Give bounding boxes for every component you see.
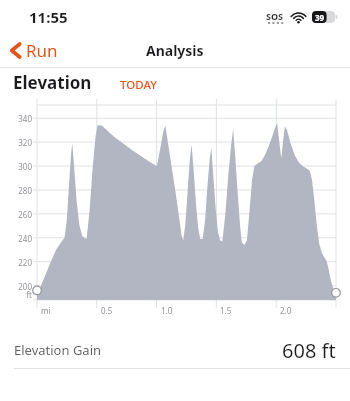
other: Wi-Fi [291,12,306,23]
staticText: 280 [1,185,32,196]
staticText: 11:55 [29,7,68,27]
staticText: 39 [315,12,325,23]
staticText: ft [1,289,32,300]
staticText: 1.0 [161,305,173,316]
button[interactable]: Run [0,36,70,65]
other: SOS [266,10,284,24]
other: Battery 39 percent [312,11,338,23]
staticText: 240 [1,233,32,244]
staticText: Elevation Gain [14,341,102,359]
staticText: Elevation [13,71,92,94]
staticText: 320 [1,137,32,148]
button[interactable]: TODAY [120,77,157,94]
staticText: 300 [1,161,32,172]
staticText: 340 [1,113,32,124]
staticText: 1.5 [220,305,232,316]
staticText: Analysis [146,41,204,60]
staticText: 260 [1,209,32,220]
staticText: 2.0 [280,305,292,316]
button[interactable]: Elevation Gain [0,332,350,368]
staticText: 200 [1,281,32,292]
staticText: 0.5 [101,305,113,316]
staticText: SOS [266,10,284,22]
staticText: Run [26,39,58,62]
staticText: 220 [1,257,32,268]
staticText: mi [41,305,51,316]
staticText: 608 ft [282,337,336,364]
